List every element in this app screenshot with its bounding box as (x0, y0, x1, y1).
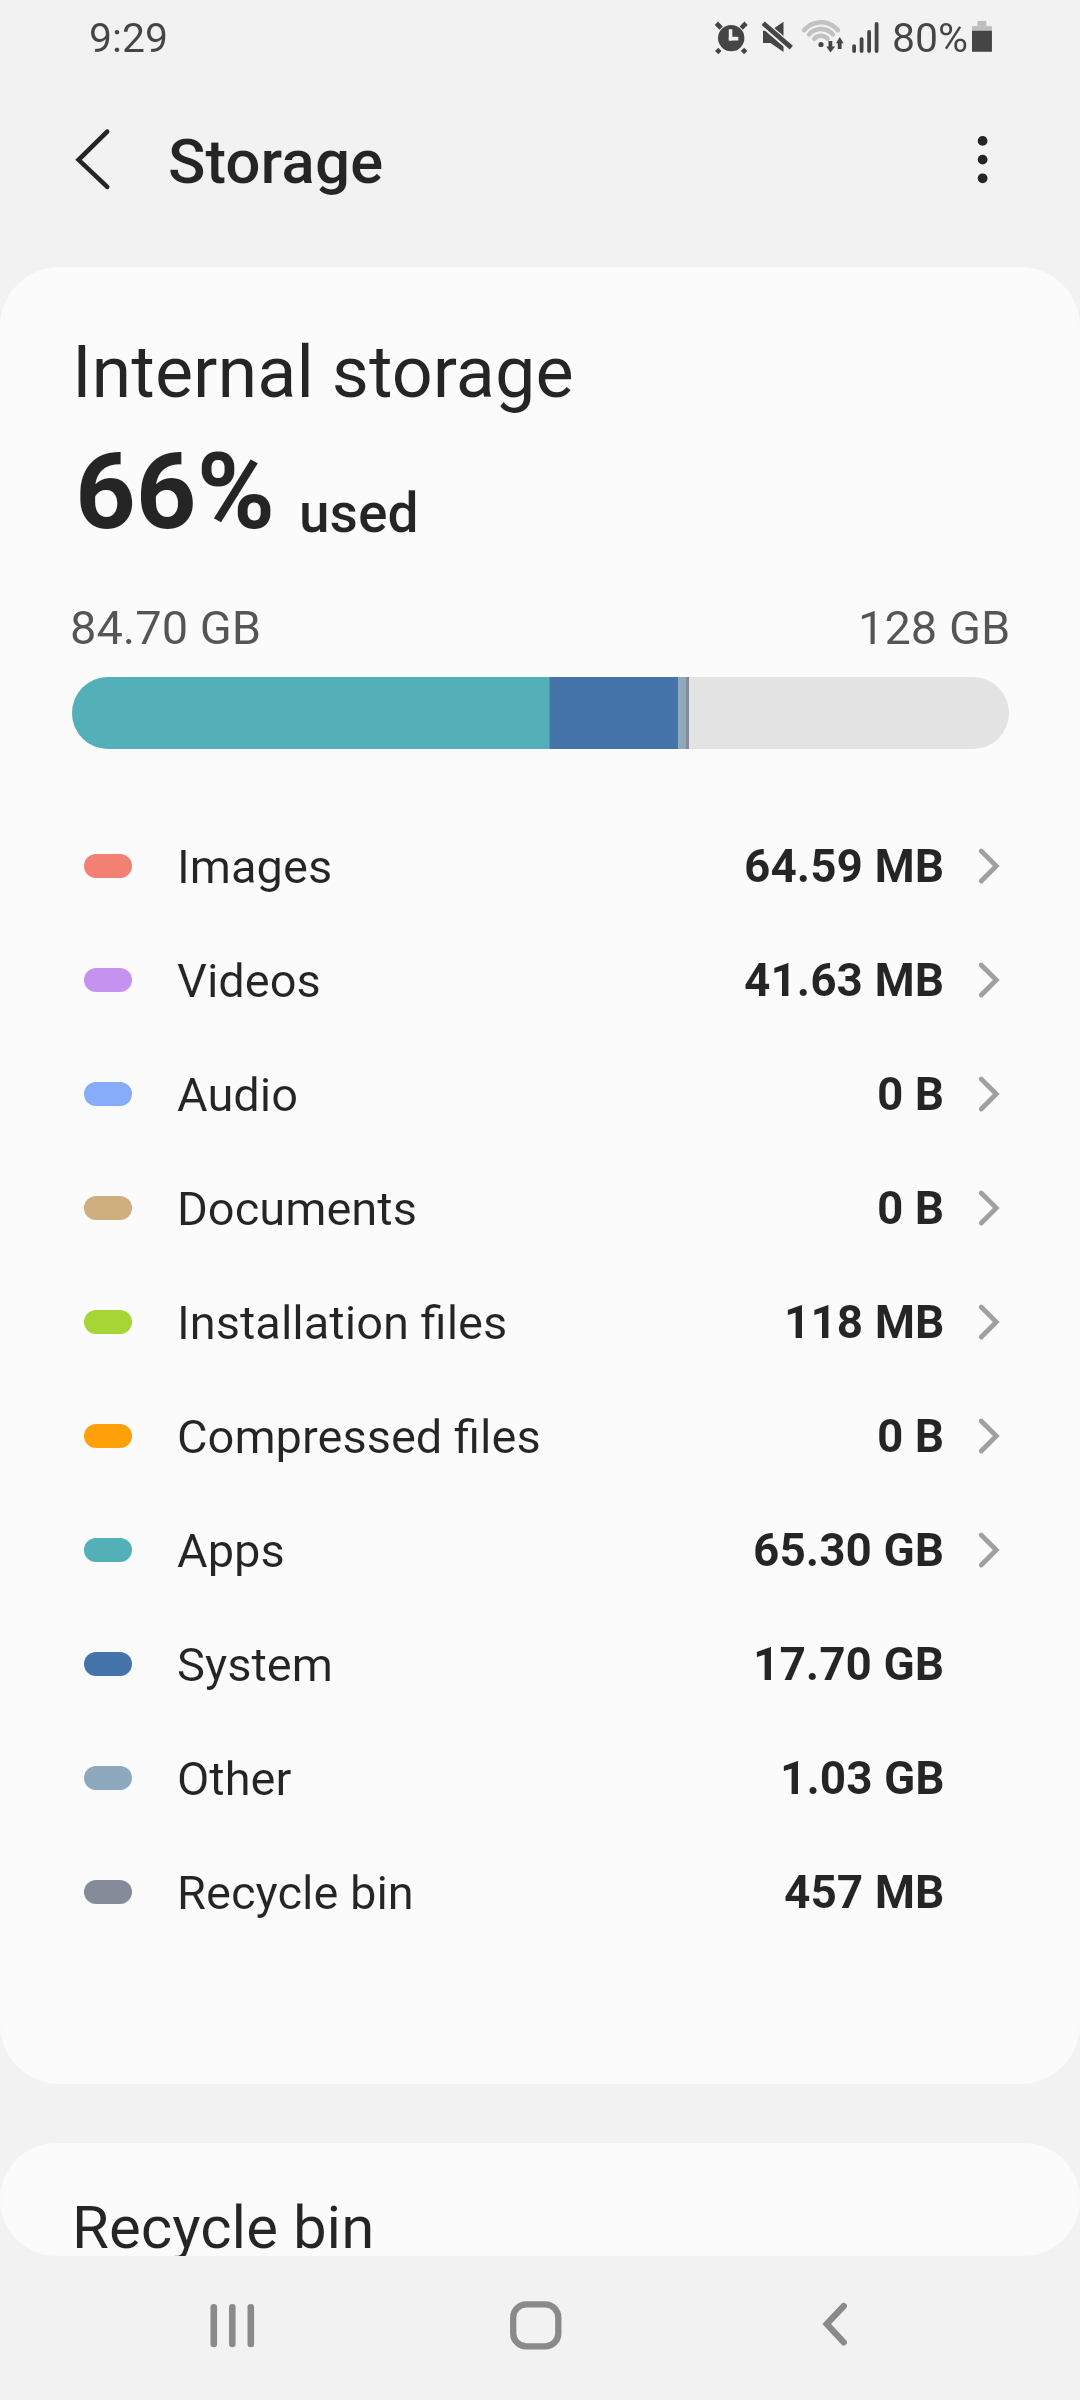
staticText: Recycle bin (177, 1865, 414, 1920)
button[interactable] (0, 1721, 1080, 1835)
button[interactable]: Recycle bin (0, 2143, 1080, 2256)
button[interactable]: More options (930, 108, 1034, 212)
staticText: 64.59 MB (744, 839, 945, 893)
staticText: Storage (168, 125, 384, 198)
staticText: used (299, 481, 419, 545)
staticText: Compressed files (177, 1409, 541, 1464)
staticText: 66% (75, 430, 275, 554)
staticText: 0 B (877, 1067, 945, 1121)
staticText: Installation files (177, 1295, 508, 1350)
button[interactable] (0, 923, 1080, 1037)
staticText: Other (177, 1751, 292, 1806)
button[interactable]: Navigate up (30, 108, 134, 212)
button[interactable] (0, 1607, 1080, 1721)
button[interactable] (0, 809, 1080, 923)
staticText: 17.70 GB (753, 1637, 945, 1691)
staticText: 41.63 MB (744, 953, 945, 1007)
staticText: System (177, 1637, 333, 1692)
button[interactable] (0, 1379, 1080, 1493)
staticText: Documents (177, 1181, 417, 1236)
staticText: Recycle bin (72, 2192, 375, 2256)
staticText: 84.70 GB (70, 600, 262, 655)
staticText: 80% (892, 14, 969, 62)
staticText: Images (177, 839, 333, 894)
staticText: Videos (177, 953, 321, 1008)
staticText: 65.30 GB (753, 1523, 945, 1577)
staticText: 0 B (877, 1181, 945, 1235)
staticText: 128 GB (858, 600, 1011, 655)
staticText: Apps (177, 1523, 285, 1578)
staticText: 0 B (877, 1409, 945, 1463)
staticText: 118 MB (784, 1295, 945, 1349)
button[interactable] (0, 1151, 1080, 1265)
staticText: Audio (177, 1067, 299, 1122)
button[interactable] (0, 1493, 1080, 1607)
staticText: 457 MB (784, 1865, 945, 1919)
button[interactable] (0, 1835, 1080, 1949)
staticText: Internal storage (72, 330, 574, 414)
staticText: 9:29 (89, 14, 169, 62)
staticText: 1.03 GB (780, 1751, 945, 1805)
button[interactable] (0, 1037, 1080, 1151)
button[interactable]: Home (453, 2268, 615, 2390)
button[interactable]: Back (754, 2268, 916, 2390)
button[interactable] (0, 1265, 1080, 1379)
button[interactable]: Recent apps (151, 2268, 313, 2390)
